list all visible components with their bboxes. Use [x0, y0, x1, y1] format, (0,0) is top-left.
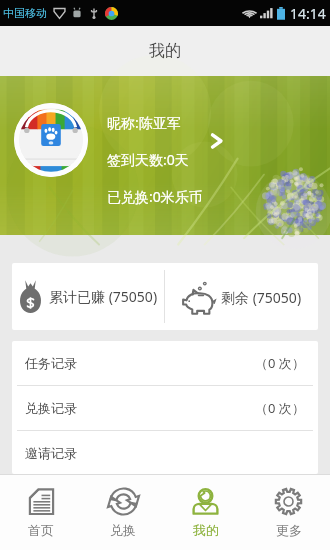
- button[interactable]: 昵称:陈亚军: [0, 76, 330, 235]
- button[interactable]: 更多: [247, 475, 330, 550]
- button[interactable]: 兑换记录: [12, 386, 318, 431]
- staticText: 14:14: [290, 4, 326, 23]
- staticText: 兑换记录: [25, 400, 77, 416]
- button[interactable]: 任务记录: [12, 341, 318, 386]
- staticText: 我的: [149, 41, 181, 61]
- staticText: 我的: [193, 522, 219, 538]
- staticText: 兑换: [110, 522, 136, 538]
- button[interactable]: 累计已赚 (75050): [12, 263, 164, 330]
- staticText: 签到天数:0天: [107, 150, 189, 169]
- staticText: 邀请记录: [25, 445, 77, 461]
- staticText: 昵称:陈亚军: [107, 113, 181, 132]
- other: Open profile: [208, 132, 226, 150]
- staticText: 任务记录: [25, 355, 77, 371]
- button[interactable]: 我的: [164, 475, 247, 550]
- staticText: 已兑换:0米乐币: [107, 187, 203, 206]
- staticText: 累计已赚 (75050): [49, 287, 158, 306]
- button[interactable]: 首页: [0, 475, 82, 550]
- button[interactable]: 邀请记录: [12, 431, 318, 474]
- staticText: 更多: [276, 522, 302, 538]
- staticText: （0 次）: [255, 354, 305, 372]
- button[interactable]: 兑换: [82, 475, 164, 550]
- staticText: 剩余 (75050): [221, 288, 302, 307]
- staticText: （0 次）: [255, 399, 305, 417]
- staticText: 首页: [28, 522, 54, 538]
- staticText: 中国移动: [3, 6, 47, 20]
- button[interactable]: 剩余 (75050): [165, 263, 318, 330]
